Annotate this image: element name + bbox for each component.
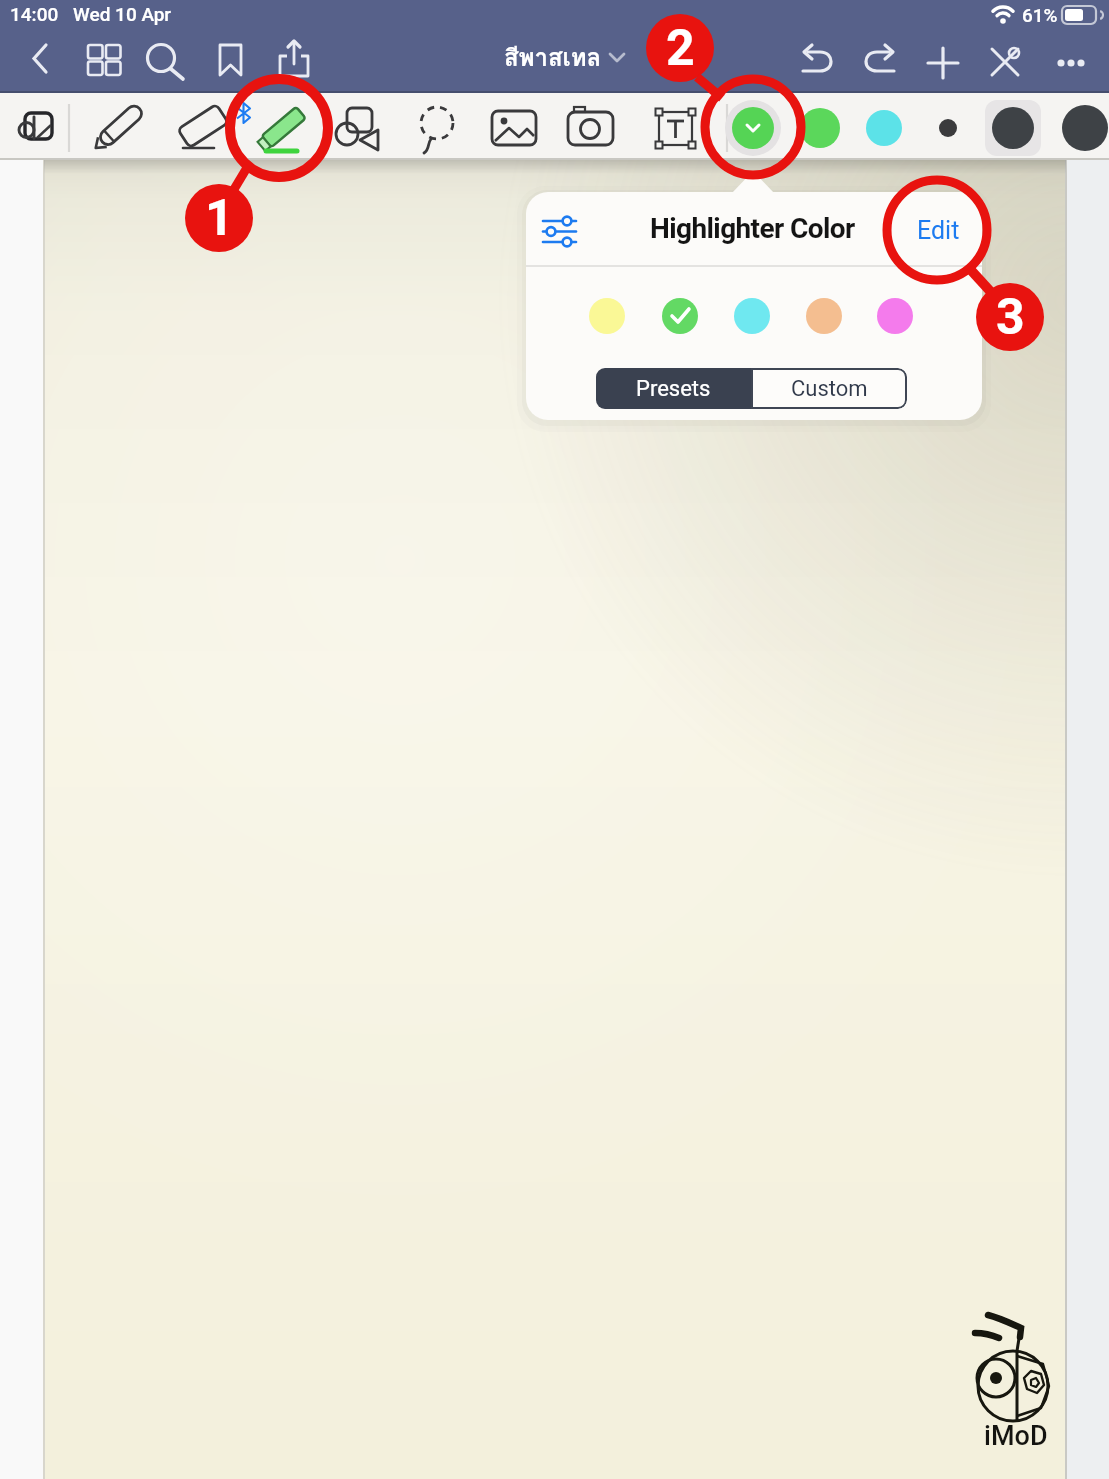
button[interactable]: [566, 104, 614, 152]
button[interactable]: [94, 104, 142, 152]
staticText: 14:00: [10, 3, 59, 25]
staticText: iMoD: [984, 1420, 1048, 1452]
button[interactable]: [274, 40, 314, 80]
button[interactable]: [985, 40, 1025, 80]
button[interactable]: [14, 104, 62, 152]
button[interactable]: [734, 298, 770, 334]
button[interactable]: [210, 40, 250, 80]
button[interactable]: [800, 108, 840, 148]
button[interactable]: [924, 40, 964, 80]
button[interactable]: [1062, 105, 1108, 151]
staticText: Highlighter Color: [650, 212, 855, 245]
staticText: Presets: [636, 376, 711, 402]
button[interactable]: [259, 104, 307, 152]
staticText: Edit: [917, 216, 960, 245]
button[interactable]: [866, 110, 902, 146]
button[interactable]: [83, 40, 123, 80]
staticText: 3: [996, 288, 1025, 347]
button[interactable]: Presets: [596, 368, 751, 409]
button[interactable]: [938, 118, 958, 138]
button[interactable]: [145, 40, 185, 80]
button[interactable]: [333, 104, 381, 152]
button[interactable]: [877, 298, 913, 334]
button[interactable]: [553, 208, 597, 252]
button[interactable]: [662, 298, 698, 334]
button[interactable]: [490, 104, 538, 152]
button[interactable]: สีพาสเทล: [483, 38, 623, 76]
button[interactable]: [22, 40, 62, 80]
button[interactable]: Custom: [751, 368, 907, 409]
button[interactable]: [798, 40, 838, 80]
button[interactable]: [1050, 40, 1090, 80]
staticText: Wed 10 Apr: [73, 3, 172, 25]
button[interactable]: [589, 298, 625, 334]
button[interactable]: [179, 104, 227, 152]
staticText: สีพาสเทล: [504, 38, 602, 76]
button[interactable]: [413, 104, 461, 152]
button[interactable]: [725, 100, 781, 156]
staticText: 2: [666, 19, 695, 78]
staticText: 1: [205, 189, 234, 248]
button[interactable]: [806, 298, 842, 334]
staticText: 61%: [1022, 4, 1058, 26]
button[interactable]: [862, 40, 902, 80]
button[interactable]: Edit: [903, 212, 973, 248]
button[interactable]: [651, 104, 699, 152]
button[interactable]: [992, 107, 1036, 151]
staticText: Custom: [791, 376, 868, 402]
